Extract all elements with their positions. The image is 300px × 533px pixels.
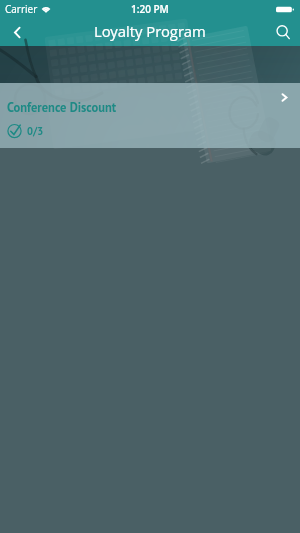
button[interactable]: Search bbox=[266, 20, 300, 46]
staticText: Loyalty Program bbox=[94, 21, 206, 41]
button[interactable]: Back bbox=[0, 20, 34, 46]
button[interactable]: Conference Discount bbox=[0, 46, 300, 148]
staticText: Carrier bbox=[5, 2, 38, 16]
staticText: 1:20 PM bbox=[131, 2, 169, 16]
staticText: 0/3 bbox=[27, 124, 44, 138]
staticText: Conference Discount bbox=[7, 99, 117, 115]
